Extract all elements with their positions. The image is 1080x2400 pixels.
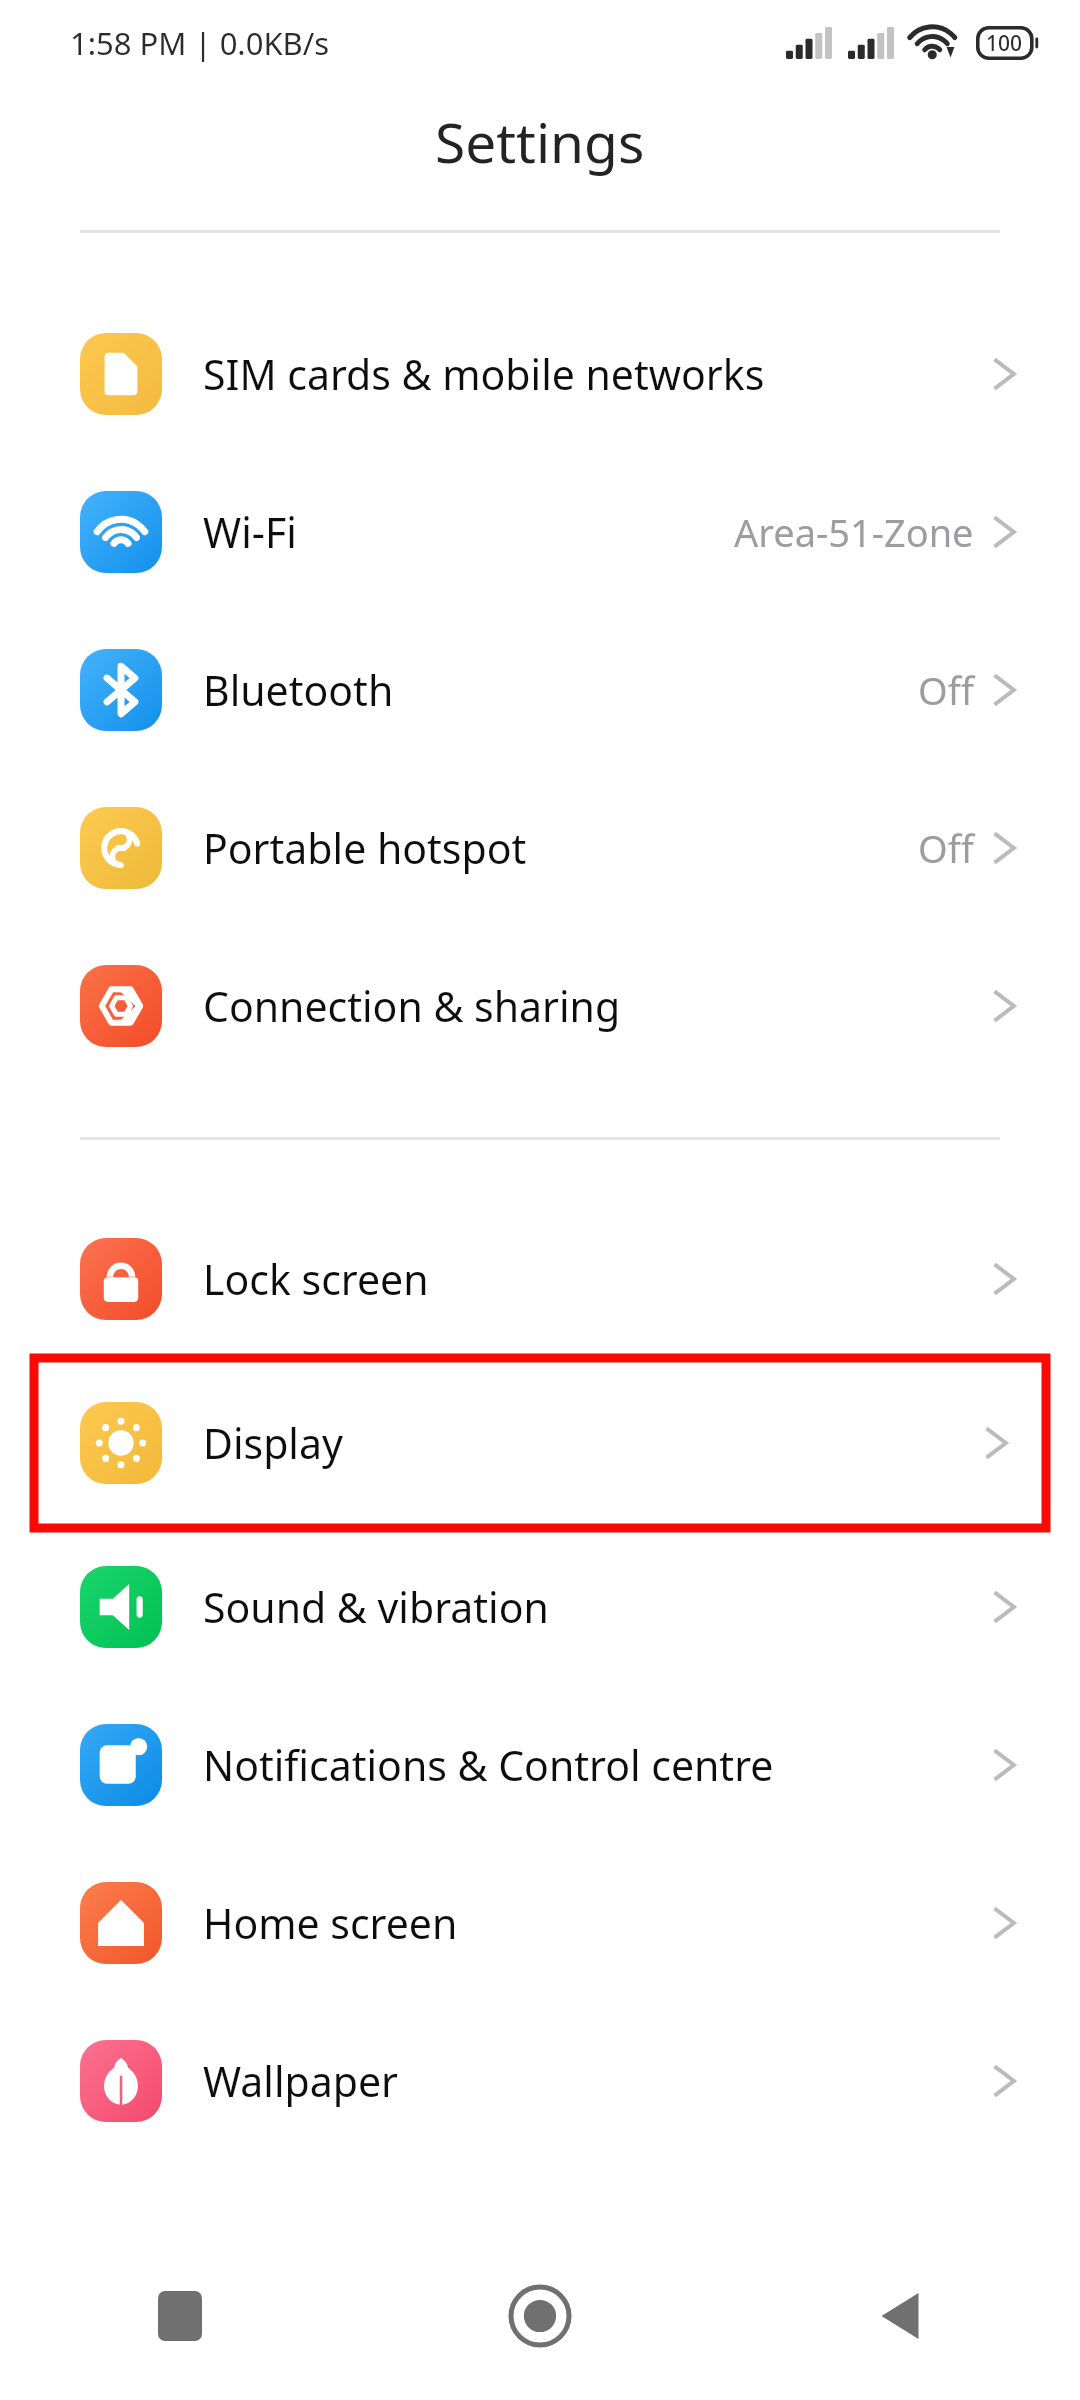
- staticText: Display: [203, 1415, 984, 1471]
- button[interactable]: Notifications & Control centre: [0, 1686, 1080, 1844]
- button[interactable]: Bluetooth: [0, 611, 1080, 769]
- button[interactable]: Home screen: [0, 1844, 1080, 2002]
- staticText: SIM cards & mobile networks: [203, 346, 992, 402]
- button[interactable]: Display: [34, 1358, 1046, 1528]
- staticText: Wi-Fi: [203, 504, 734, 560]
- button[interactable]: Wallpaper: [0, 2002, 1080, 2160]
- button[interactable]: Lock screen: [0, 1200, 1080, 1358]
- staticText: Sound & vibration: [203, 1579, 992, 1635]
- staticText: 100: [986, 29, 1023, 58]
- staticText: Off: [918, 664, 974, 716]
- staticText: Portable hotspot: [203, 820, 918, 876]
- button[interactable]: Home: [360, 2256, 720, 2376]
- staticText: 1:58 PM | 0.0KB/s: [70, 22, 330, 64]
- staticText: Lock screen: [203, 1251, 992, 1307]
- staticText: Bluetooth: [203, 662, 918, 718]
- button[interactable]: Wi-Fi: [0, 453, 1080, 611]
- staticText: Wallpaper: [203, 2053, 992, 2109]
- staticText: Off: [918, 822, 974, 874]
- staticText: Area-51-Zone: [734, 506, 974, 558]
- button[interactable]: Portable hotspot: [0, 769, 1080, 927]
- staticText: Connection & sharing: [203, 978, 992, 1034]
- staticText: Home screen: [203, 1895, 992, 1951]
- button[interactable]: Back: [720, 2256, 1080, 2376]
- button[interactable]: SIM cards & mobile networks: [0, 295, 1080, 453]
- button[interactable]: Recents: [0, 2256, 360, 2376]
- staticText: Settings: [435, 104, 645, 179]
- button[interactable]: Sound & vibration: [0, 1528, 1080, 1686]
- button[interactable]: Connection & sharing: [0, 927, 1080, 1085]
- staticText: Notifications & Control centre: [203, 1737, 992, 1793]
